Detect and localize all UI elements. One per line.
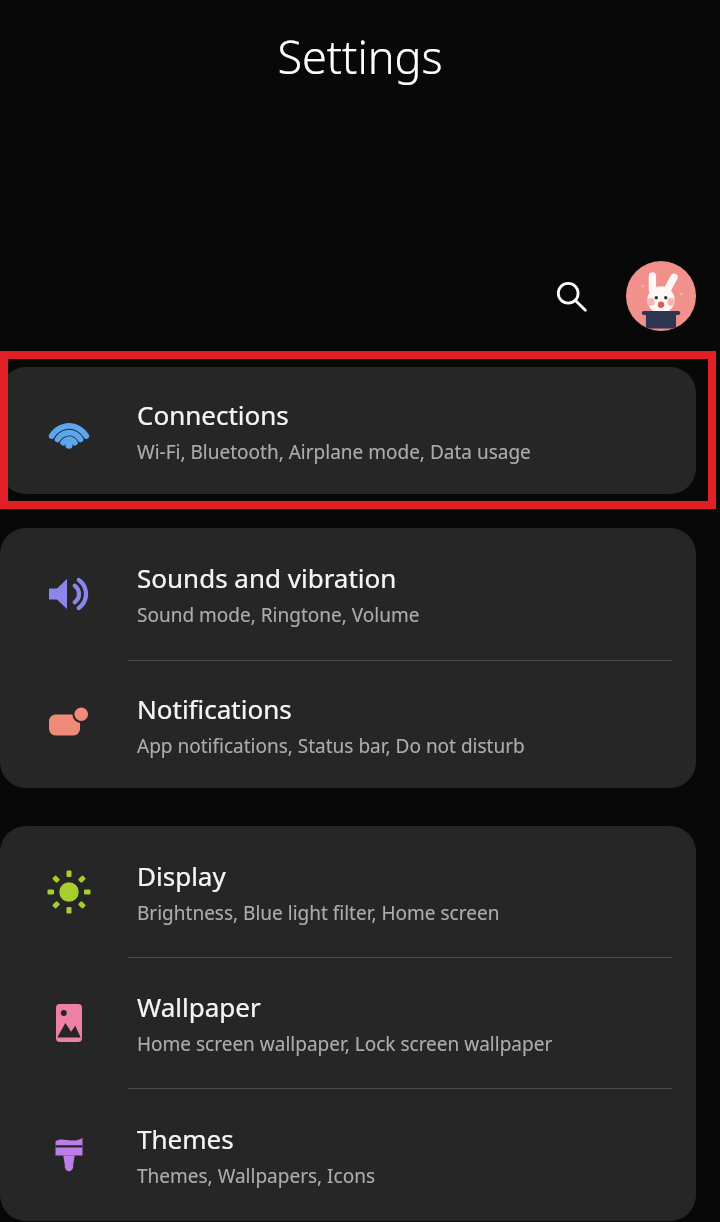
staticText: Themes	[137, 1121, 234, 1156]
staticText: Display	[137, 858, 226, 893]
staticText: Themes, Wallpapers, Icons	[137, 1163, 376, 1189]
staticText: Notifications	[137, 691, 292, 726]
button[interactable]: Connections	[0, 367, 696, 494]
staticText: Sound mode, Ringtone, Volume	[137, 602, 420, 628]
button[interactable]: Search settings	[542, 267, 600, 325]
staticText: App notifications, Status bar, Do not di…	[137, 733, 525, 759]
staticText: Brightness, Blue light filter, Home scre…	[137, 900, 500, 926]
staticText: Settings	[277, 26, 443, 87]
button[interactable]: Themes	[0, 1089, 696, 1221]
staticText: Wallpaper	[137, 989, 261, 1024]
button[interactable]: Display	[0, 826, 696, 957]
staticText: Connections	[137, 397, 289, 432]
button[interactable]: Notifications	[0, 661, 696, 788]
button[interactable]: Sounds and vibration	[0, 528, 696, 660]
staticText: Wi-Fi, Bluetooth, Airplane mode, Data us…	[137, 439, 531, 465]
button[interactable]: Samsung account profile	[626, 261, 696, 331]
button[interactable]: Wallpaper	[0, 958, 696, 1088]
staticText: Sounds and vibration	[137, 560, 397, 595]
staticText: Home screen wallpaper, Lock screen wallp…	[137, 1031, 553, 1057]
